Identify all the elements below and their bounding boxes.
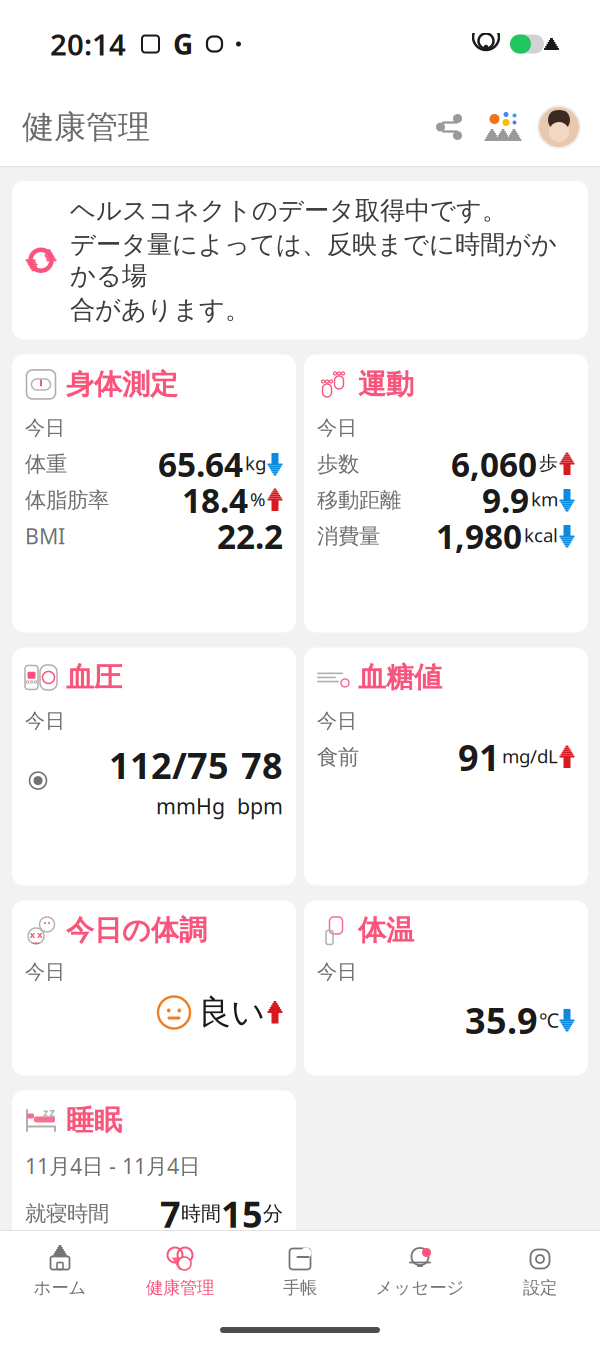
staticText: 22.2 [217,514,283,558]
button[interactable]: 血圧 [12,647,296,885]
button[interactable]: 設定 [480,1237,600,1306]
button[interactable]: 健康管理 [120,1237,240,1306]
staticText: データ量によっては、反映までに時間がかかる場 [70,229,557,291]
button[interactable]: 運動 [304,354,588,632]
staticText: 健康管理 [22,107,150,147]
staticText: 1,980 [436,514,522,558]
staticText: 15 [221,1190,263,1238]
button[interactable]: アシスタント [480,106,526,148]
staticText: 20:14 [50,24,126,63]
staticText: 9.9 [482,478,529,522]
staticText: 身体測定 [66,367,178,402]
staticText: 運動 [358,367,414,402]
staticText: z [43,1105,48,1120]
staticText: 今日 [317,708,357,733]
staticText: 移動距離 [317,487,401,513]
staticText: 設定 [523,1277,557,1298]
staticText: x [37,928,42,940]
button[interactable]: x [12,900,296,1075]
button[interactable]: 手帳 [240,1237,360,1306]
staticText: % [250,487,266,511]
staticText: 体脂肪率 [25,487,109,513]
staticText: 11月4日 - 11月4日 [25,1151,200,1180]
button[interactable]: z [12,1090,296,1260]
staticText: 今日 [317,959,357,984]
staticText: 食前 [317,744,359,770]
staticText: 78 [241,741,283,789]
staticText: 就寝時間 [25,1201,109,1227]
staticText: bpm [237,792,283,820]
staticText: BMI [25,522,65,550]
staticText: kcal [524,523,558,547]
staticText: ℃ [539,1007,559,1033]
staticText: x [30,928,35,940]
staticText: km [531,487,558,511]
staticText: ヘルスコネクトのデータ取得中です。 [70,195,507,226]
staticText: 今日 [25,959,65,984]
button[interactable]: プロフィール [538,106,580,148]
staticText: 健康管理 [146,1277,214,1298]
button[interactable]: 体温 [304,900,588,1075]
button[interactable]: メッセージ [360,1237,480,1306]
staticText: 体温 [358,913,414,948]
staticText: 91 [458,733,500,781]
staticText: 時間 [181,1201,221,1226]
staticText: 18.4 [182,478,248,522]
staticText: 今日の体調 [66,913,207,948]
staticText: 7 [160,1190,181,1238]
button[interactable]: ホーム [0,1237,120,1306]
staticText: 35.9 [465,996,538,1044]
staticText: mmHg [156,792,225,820]
staticText: 歩数 [317,451,359,477]
staticText: ホーム [33,1277,86,1298]
staticText: 65.64 [158,442,243,486]
staticText: 今日 [25,415,65,440]
staticText: 睡眠 [66,1103,122,1138]
staticText: メッセージ [375,1277,464,1298]
staticText: mg/dL [502,744,558,768]
button[interactable]: 共有 [428,106,470,148]
staticText: z [49,1104,55,1120]
staticText: 血圧 [66,660,122,695]
staticText: kg [245,451,266,475]
staticText: 6,060 [451,442,537,486]
staticText: 消費量 [317,523,380,549]
staticText: 体重 [25,451,67,477]
button[interactable]: 血糖値 [304,647,588,885]
staticText: G [173,25,193,63]
staticText: 今日 [25,708,65,733]
staticText: 112/75 [109,741,229,789]
staticText: 手帳 [283,1277,317,1298]
staticText: 歩 [539,452,558,474]
staticText: 今日 [317,415,357,440]
staticText: 血糖値 [358,660,442,695]
button[interactable]: 身体測定 [12,354,296,632]
staticText: 分 [263,1201,283,1226]
staticText: 合があります。 [70,294,250,325]
staticText: 良い [198,992,265,1033]
